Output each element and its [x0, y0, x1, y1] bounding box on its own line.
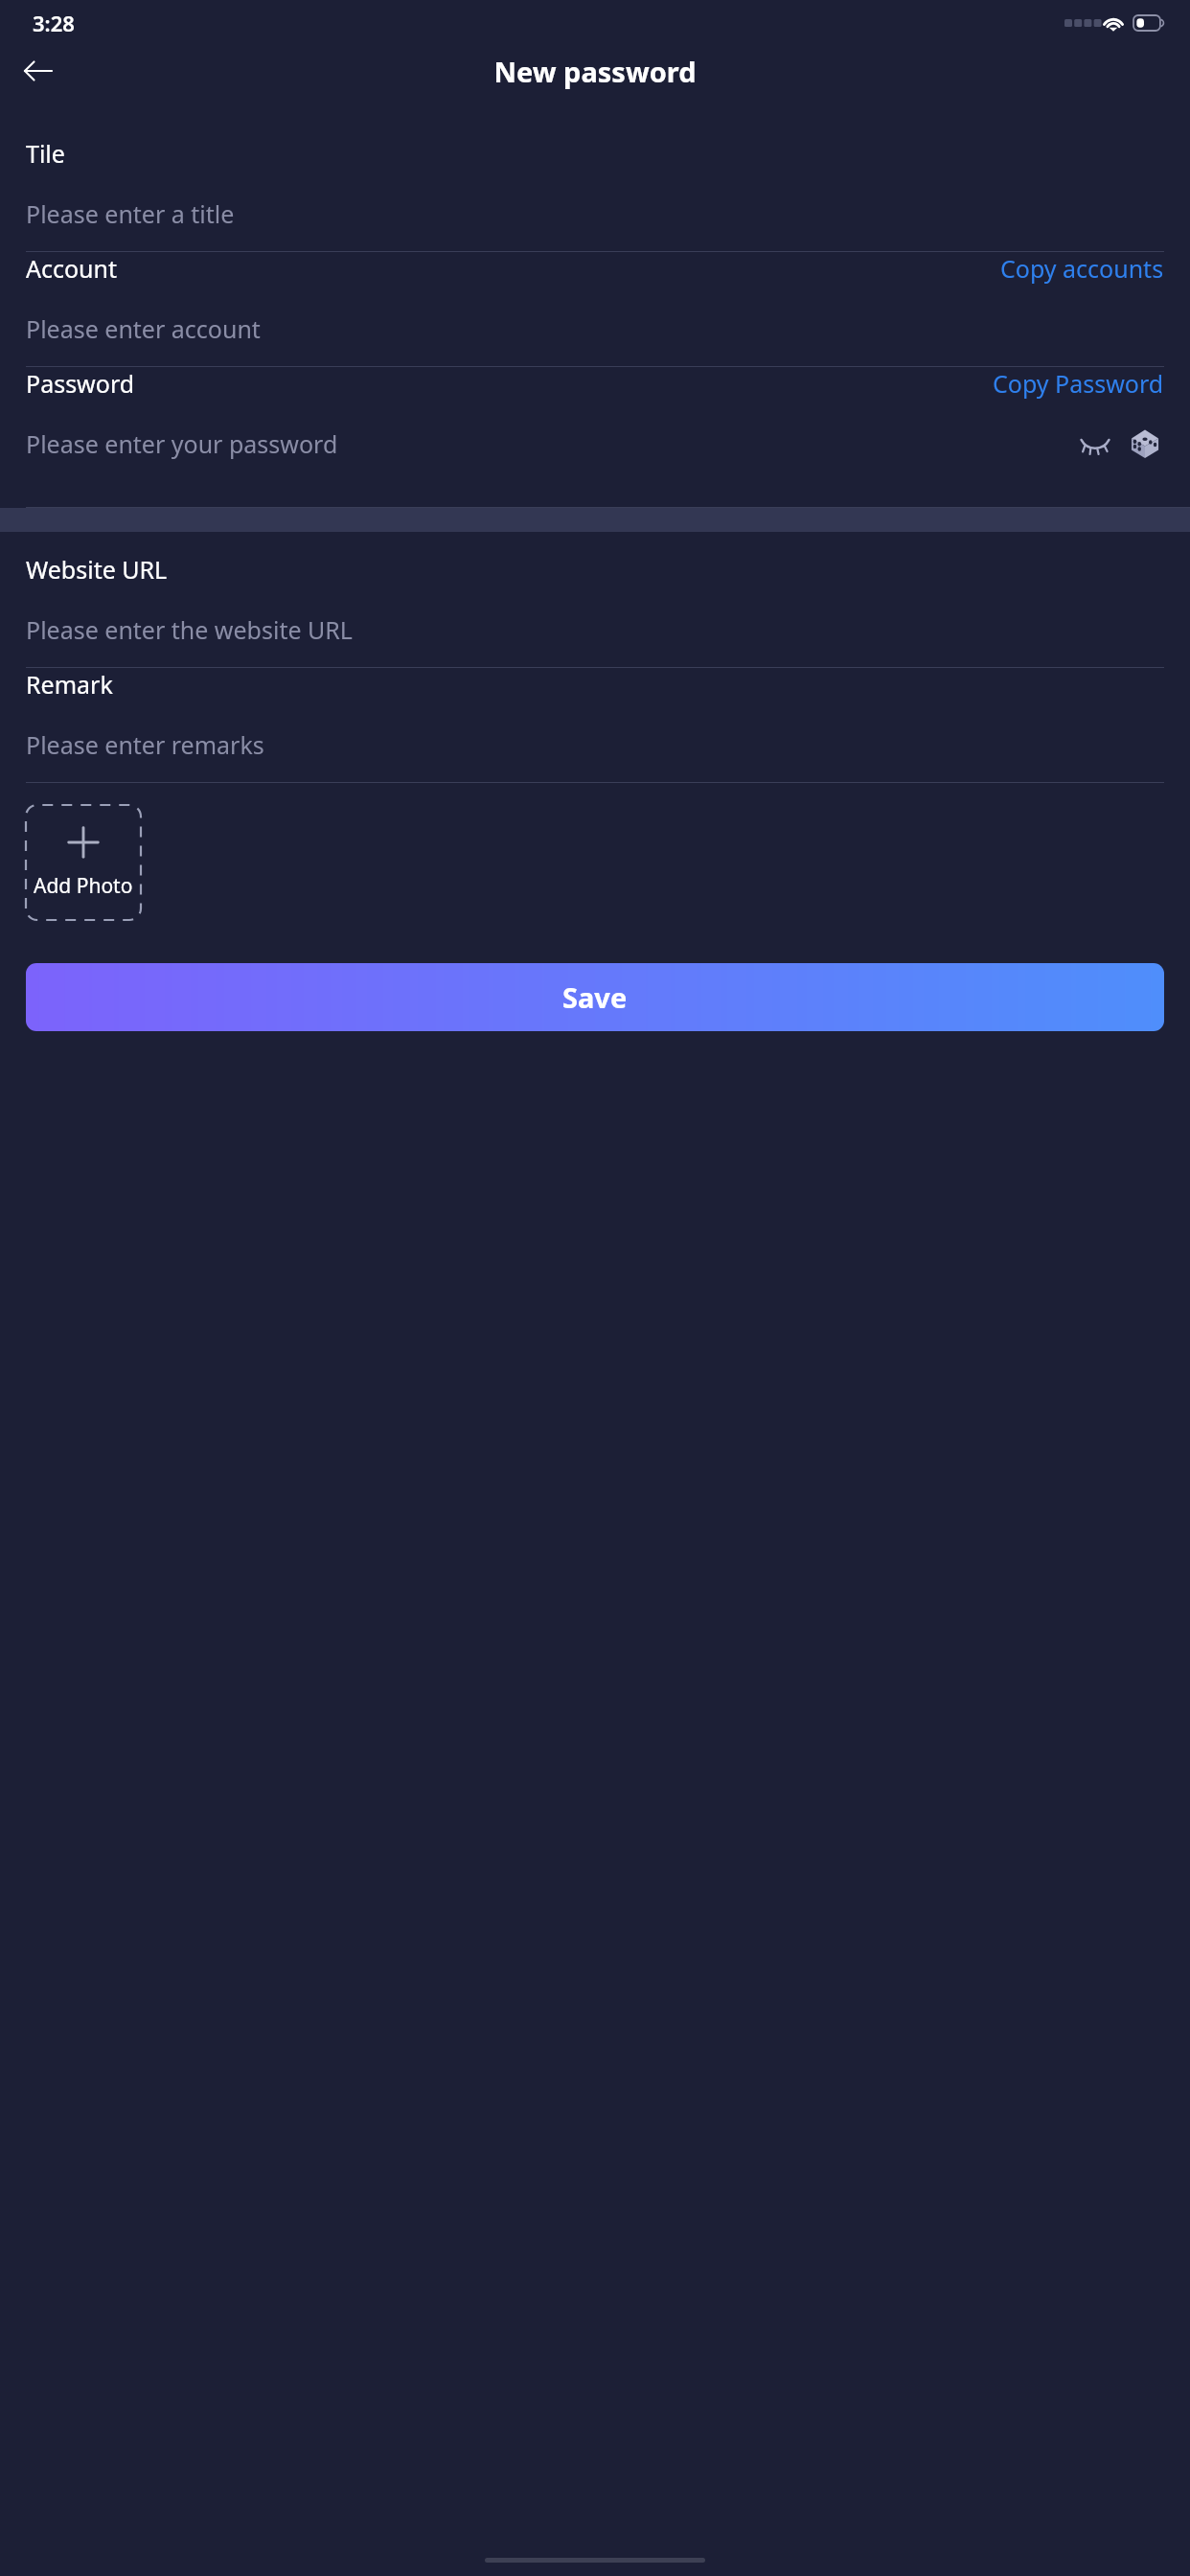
- button[interactable]: Save: [26, 963, 1164, 1031]
- staticText: New password: [493, 53, 697, 90]
- staticText: Please enter remarks: [26, 728, 264, 761]
- staticText: Add Photo: [34, 872, 133, 900]
- staticText: Account: [26, 252, 118, 285]
- button[interactable]: Please enter remarks: [26, 728, 1164, 761]
- staticText: Please enter a title: [26, 197, 235, 230]
- button[interactable]: Add Photo: [26, 805, 141, 920]
- button[interactable]: Toggle password visibility: [1074, 425, 1116, 462]
- staticText: Please enter account: [26, 312, 261, 345]
- staticText: Copy Password: [993, 367, 1164, 400]
- staticText: Please enter the website URL: [26, 613, 353, 646]
- button[interactable]: Back: [13, 46, 63, 96]
- button[interactable]: Copy Password: [993, 367, 1164, 400]
- button[interactable]: Please enter the website URL: [26, 613, 1164, 646]
- button[interactable]: Please enter account: [26, 312, 1164, 345]
- button[interactable]: Please enter a title: [26, 197, 1164, 230]
- staticText: 3:28: [33, 9, 75, 37]
- staticText: Save: [562, 978, 628, 1016]
- staticText: Password: [26, 367, 135, 400]
- staticText: Tile: [26, 137, 65, 170]
- button[interactable]: Generate random password: [1126, 425, 1164, 462]
- button[interactable]: Copy accounts: [1000, 252, 1164, 285]
- staticText: Copy accounts: [1000, 252, 1164, 285]
- staticText: Remark: [26, 668, 113, 701]
- staticText: Please enter your password: [26, 427, 338, 460]
- button[interactable]: Please enter your password: [26, 427, 1074, 460]
- staticText: Website URL: [26, 553, 168, 586]
